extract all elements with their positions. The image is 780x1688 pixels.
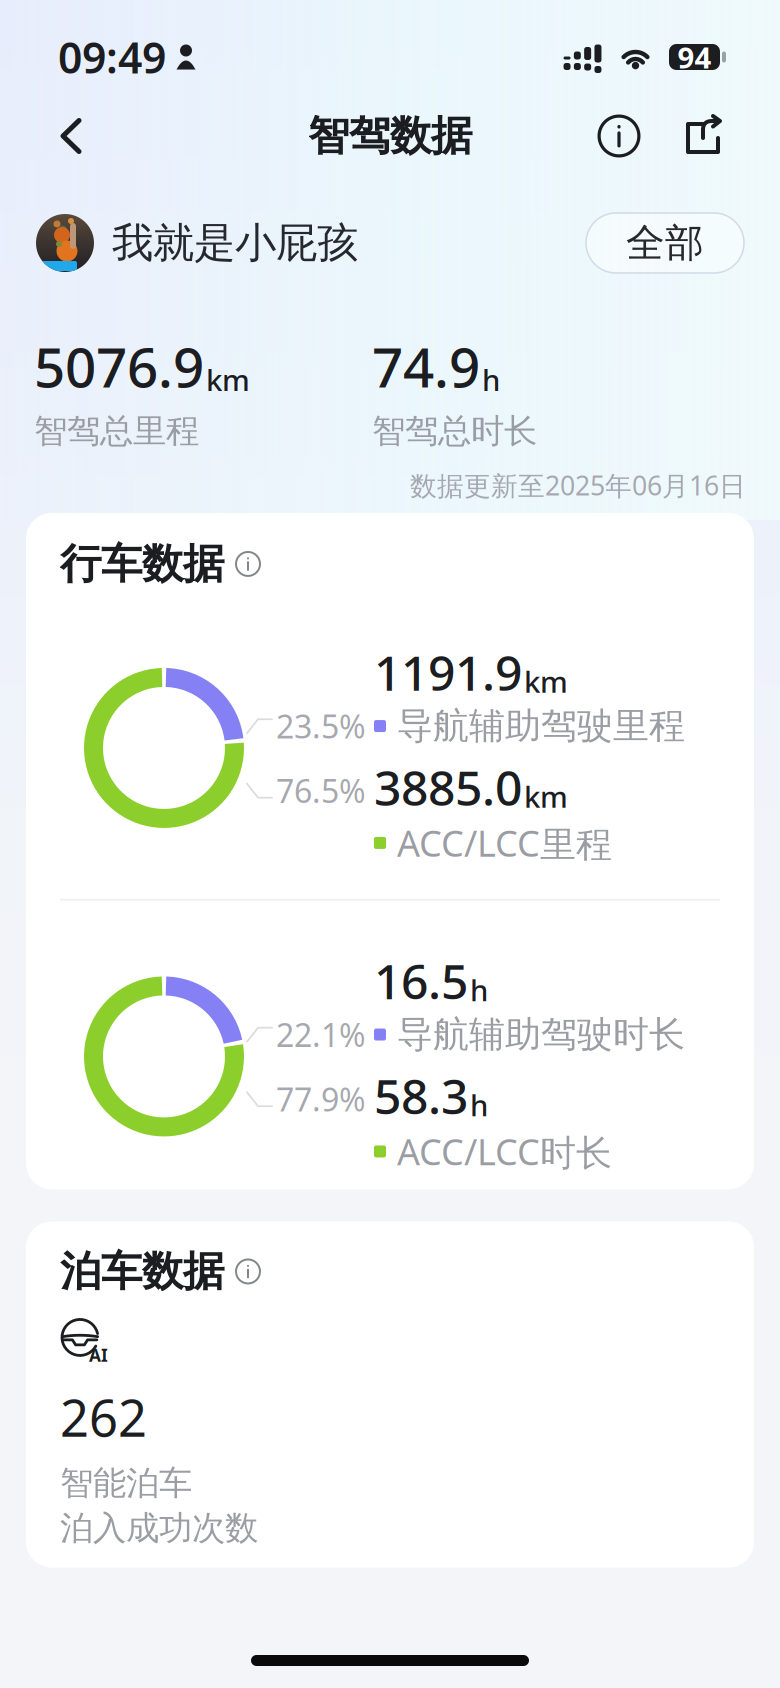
staticText: 5076.9 (34, 330, 204, 403)
staticText: h (482, 360, 500, 399)
button[interactable]: 全部 (586, 213, 744, 273)
button[interactable]: Back (38, 103, 104, 169)
staticText: 09:49 (58, 29, 166, 85)
staticText: ACC/LCC里程 (397, 819, 612, 867)
staticText: 泊入成功次数 (60, 1508, 258, 1549)
staticText: ACC/LCC时长 (397, 1127, 612, 1175)
staticText: km (524, 662, 568, 701)
staticText: 1191.9 (374, 640, 522, 704)
staticText: 74.9 (372, 330, 480, 403)
staticText: 智驾总里程 (34, 411, 199, 451)
staticText: 76.5% (276, 769, 366, 812)
button[interactable]: Info (586, 103, 652, 169)
button[interactable]: 我就是小屁孩 (36, 214, 358, 272)
staticText: 全部 (626, 219, 704, 267)
staticText: 262 (60, 1383, 147, 1451)
staticText: 智能泊车 (60, 1463, 192, 1504)
staticText: 58.3 (374, 1064, 468, 1127)
staticText: 导航辅助驾驶时长 (397, 1012, 685, 1057)
staticText: 77.9% (276, 1078, 366, 1120)
staticText: 数据更新至2025年06月16日 (410, 467, 746, 503)
staticText: 23.5% (276, 705, 366, 747)
staticText: 智驾总时长 (372, 411, 537, 451)
staticText: 导航辅助驾驶里程 (397, 704, 685, 748)
staticText: h (470, 1085, 488, 1124)
staticText: 我就是小屁孩 (112, 218, 358, 268)
button[interactable]: Share (670, 103, 736, 169)
staticText: h (470, 970, 488, 1009)
staticText: 3885.0 (374, 755, 522, 819)
staticText: km (524, 777, 568, 816)
staticText: 22.1% (276, 1013, 366, 1056)
staticText: AI (89, 1343, 108, 1366)
staticText: 智驾数据 (308, 111, 472, 161)
staticText: 行车数据 (60, 539, 224, 589)
staticText: 94 (677, 37, 711, 76)
staticText: km (206, 360, 250, 399)
staticText: 16.5 (374, 949, 468, 1012)
staticText: 泊车数据 (60, 1246, 224, 1297)
